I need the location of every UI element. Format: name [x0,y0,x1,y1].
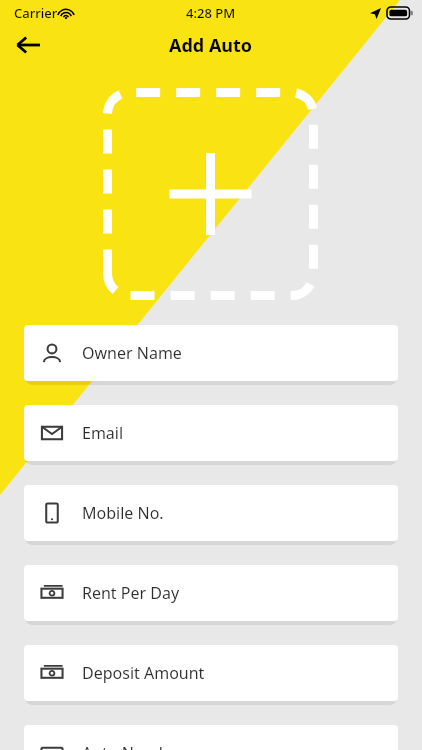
staticText: Carrier [14,4,58,22]
staticText: 4:28 PM [186,4,236,22]
staticText: Email [82,422,124,444]
button[interactable]: Auto Number [24,725,398,750]
button[interactable]: Owner Name [24,325,398,381]
button[interactable]: Deposit Amount [24,645,398,701]
button[interactable]: Rent Per Day [24,565,398,621]
staticText: Owner Name [82,342,182,364]
button[interactable]: Email [24,405,398,461]
button[interactable]: Mobile No. [24,485,398,541]
staticText: Mobile No. [82,502,164,524]
staticText: Add Auto [169,33,253,58]
button[interactable]: Back [8,26,48,64]
staticText: Rent Per Day [82,582,180,604]
button[interactable]: Add photo [103,88,318,300]
staticText: Auto Number [82,742,185,750]
staticText: Deposit Amount [82,662,205,684]
